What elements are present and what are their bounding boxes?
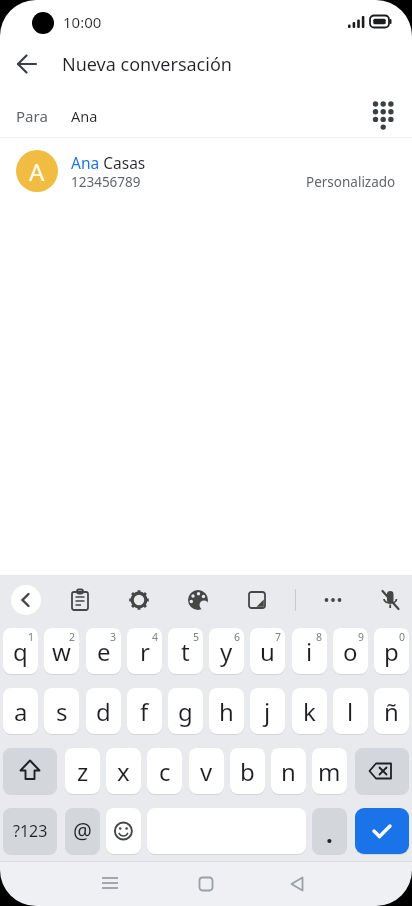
staticText: e xyxy=(97,635,111,668)
staticText: Ana Casas xyxy=(71,152,146,172)
button[interactable]: s xyxy=(44,688,79,734)
staticText: 123456789 xyxy=(71,173,141,191)
staticText: q xyxy=(13,635,28,668)
button[interactable] xyxy=(106,808,141,854)
button[interactable] xyxy=(8,45,46,83)
button[interactable]: n xyxy=(271,748,306,794)
staticText: 9 xyxy=(358,630,365,643)
button[interactable]: f xyxy=(127,688,162,734)
button[interactable]: r xyxy=(127,628,162,674)
staticText: 7 xyxy=(275,630,282,643)
button[interactable]: v xyxy=(189,748,224,794)
staticText: r xyxy=(140,635,150,668)
staticText: 1 xyxy=(28,630,35,643)
staticText: t xyxy=(181,635,190,668)
staticText: ñ xyxy=(384,695,399,728)
staticText: k xyxy=(303,695,316,728)
button[interactable]: u xyxy=(250,628,285,674)
button[interactable] xyxy=(188,866,224,902)
button[interactable] xyxy=(65,585,95,615)
staticText: g xyxy=(178,695,193,728)
staticText: n xyxy=(281,755,296,788)
button[interactable]: y xyxy=(209,628,244,674)
staticText: s xyxy=(56,695,68,728)
staticText: z xyxy=(77,755,89,788)
staticText: ?123 xyxy=(13,820,48,842)
staticText: b xyxy=(240,755,255,788)
button[interactable] xyxy=(0,142,412,200)
staticText: a xyxy=(14,695,28,728)
button[interactable]: j xyxy=(250,688,285,734)
staticText: u xyxy=(260,635,275,668)
staticText: v xyxy=(200,755,213,788)
staticText: d xyxy=(96,695,111,728)
button[interactable] xyxy=(92,866,128,902)
staticText: f xyxy=(140,695,149,728)
button[interactable]: p xyxy=(374,628,409,674)
staticText: 0 xyxy=(399,630,406,643)
button[interactable]: t xyxy=(168,628,203,674)
staticText: y xyxy=(220,635,233,668)
staticText: Personalizado xyxy=(306,173,396,191)
staticText: 8 xyxy=(316,630,323,643)
button[interactable]: b xyxy=(230,748,265,794)
button[interactable]: i xyxy=(292,628,327,674)
staticText: i xyxy=(306,635,313,668)
staticText: o xyxy=(343,635,358,668)
button[interactable]: z xyxy=(65,748,100,794)
button[interactable]: ñ xyxy=(374,688,409,734)
staticText: h xyxy=(219,695,234,728)
button[interactable] xyxy=(375,585,405,615)
staticText: Ana xyxy=(71,106,98,126)
button[interactable]: c xyxy=(147,748,182,794)
button[interactable] xyxy=(355,748,409,794)
staticText: 3 xyxy=(110,630,117,643)
staticText: p xyxy=(384,635,399,668)
staticText: 2 xyxy=(69,630,76,643)
button[interactable]: q xyxy=(3,628,38,674)
button[interactable] xyxy=(242,585,272,615)
button[interactable]: x xyxy=(106,748,141,794)
staticText: Para xyxy=(16,106,48,126)
staticText: 4 xyxy=(152,630,159,643)
staticText: w xyxy=(52,635,71,668)
button[interactable]: e xyxy=(86,628,121,674)
staticText: c xyxy=(159,755,171,788)
button[interactable]: m xyxy=(312,748,347,794)
staticText: x xyxy=(117,755,130,788)
staticText: m xyxy=(318,755,341,788)
button[interactable]: g xyxy=(168,688,203,734)
button[interactable]: k xyxy=(292,688,327,734)
staticText: l xyxy=(347,695,354,728)
button[interactable]: a xyxy=(3,688,38,734)
button[interactable]: o xyxy=(333,628,368,674)
staticText: A xyxy=(29,155,45,188)
button[interactable]: d xyxy=(86,688,121,734)
staticText: Nueva conversación xyxy=(62,52,232,76)
button[interactable] xyxy=(364,96,402,134)
staticText: j xyxy=(264,695,271,728)
button[interactable] xyxy=(355,808,409,854)
button[interactable]: h xyxy=(209,688,244,734)
button[interactable]: l xyxy=(333,688,368,734)
staticText: 6 xyxy=(234,630,241,643)
staticText: 10:00 xyxy=(63,12,102,32)
staticText: @ xyxy=(73,817,92,846)
button[interactable] xyxy=(11,585,41,615)
button[interactable]: @ xyxy=(65,808,100,854)
staticText: 5 xyxy=(193,630,200,643)
button[interactable] xyxy=(183,585,213,615)
button[interactable]: w xyxy=(44,628,79,674)
button[interactable] xyxy=(312,808,347,854)
button[interactable] xyxy=(279,866,315,902)
button[interactable]: ?123 xyxy=(3,808,57,854)
button[interactable] xyxy=(3,748,57,794)
button[interactable] xyxy=(124,585,154,615)
button[interactable] xyxy=(318,585,348,615)
